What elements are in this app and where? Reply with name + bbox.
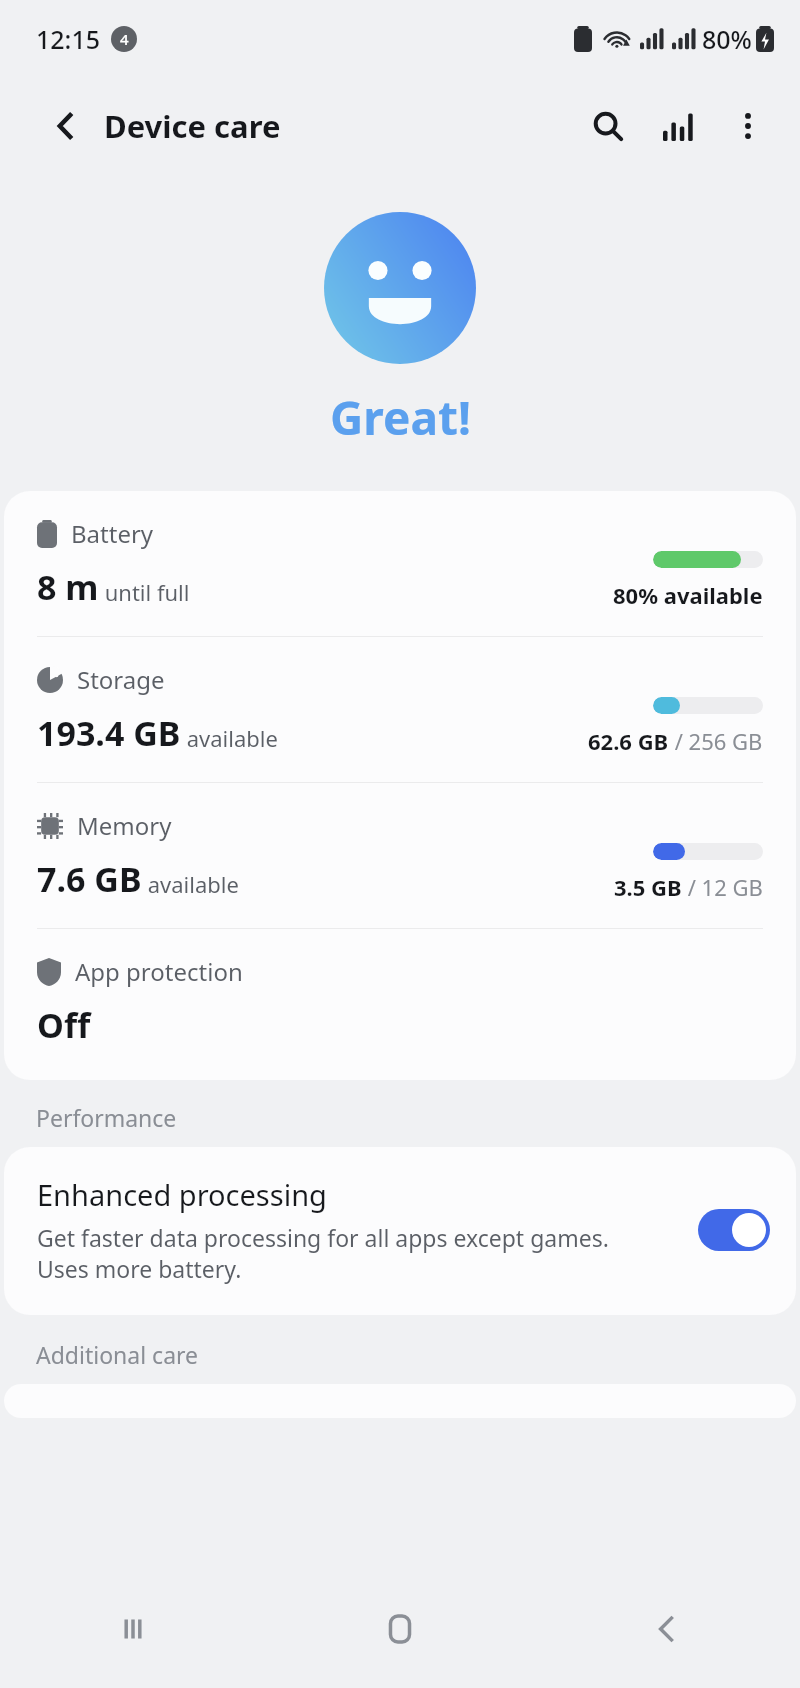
staticText: 7.6 GB [37, 856, 142, 902]
button[interactable]: More options [720, 98, 776, 154]
staticText: 3.5 GB [614, 872, 682, 902]
staticText: until full [99, 577, 190, 607]
staticText: Battery [71, 517, 154, 550]
button[interactable]: Search [580, 98, 636, 154]
staticText: Off [37, 1002, 91, 1048]
staticText: 193.4 GB [37, 710, 181, 756]
button[interactable]: Enhanced processing toggle [698, 1209, 770, 1251]
staticText: 80% available [613, 580, 763, 610]
staticText: 62.6 GB [588, 726, 669, 756]
staticText: 12:15 [36, 22, 101, 56]
staticText: Device care [104, 105, 281, 147]
button[interactable]: Enhanced processing [4, 1147, 796, 1315]
staticText: 8 m [37, 564, 99, 610]
button[interactable]: Battery [4, 491, 796, 636]
staticText: Great! [330, 386, 471, 449]
staticText: 4 [120, 29, 129, 49]
staticText: / 12 GB [682, 872, 763, 902]
button[interactable]: Storage [4, 637, 796, 782]
staticText: Additional care [36, 1339, 199, 1370]
staticText: / 256 GB [669, 726, 763, 756]
staticText: Performance [36, 1102, 177, 1133]
staticText: available [181, 723, 278, 753]
button[interactable]: Home [355, 1584, 445, 1674]
button[interactable]: Recent apps [88, 1584, 178, 1674]
staticText: 80% [702, 22, 752, 56]
staticText: available [142, 869, 239, 899]
button[interactable]: Usage statistics [650, 98, 706, 154]
button[interactable]: Back [622, 1584, 712, 1674]
staticText: Enhanced processing [37, 1175, 327, 1214]
staticText: Get faster data processing for all apps … [37, 1222, 609, 1285]
staticText: Storage [77, 663, 165, 696]
button[interactable]: Memory [4, 783, 796, 928]
staticText: App protection [75, 955, 243, 988]
staticText: Memory [77, 809, 172, 842]
button[interactable]: App protection [4, 929, 796, 1080]
button[interactable]: Back [44, 104, 88, 148]
